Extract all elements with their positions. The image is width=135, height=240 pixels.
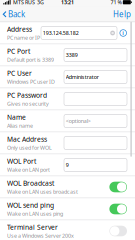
- staticText: i: [122, 29, 124, 37]
- button[interactable]: 3389: [64, 48, 127, 61]
- button[interactable]: WOL send ping: [0, 198, 135, 220]
- staticText: Only used for WOL: [7, 144, 52, 151]
- button[interactable]: Info: [119, 29, 127, 37]
- button[interactable]: WOL Broadcast: [0, 176, 135, 198]
- staticText: Back: [8, 9, 25, 19]
- staticText: MTS RUS 3G: [11, 0, 44, 6]
- staticText: WOL Broadcast: [7, 179, 54, 188]
- staticText: <optional>: [66, 117, 91, 125]
- button[interactable]: Terminal Server: [0, 220, 135, 240]
- staticText: WOL send ping: [7, 201, 54, 210]
- button[interactable]: Help: [109, 7, 135, 21]
- staticText: Wake on LAN uses ping: [7, 210, 63, 217]
- button[interactable]: 9: [64, 158, 127, 171]
- staticText: Alias name: [7, 122, 33, 129]
- staticText: Default port is 3389: [7, 56, 54, 63]
- staticText: Mac Address: [7, 135, 47, 144]
- staticText: Terminal Server: [7, 223, 58, 232]
- button[interactable]: Administrator: [64, 70, 127, 83]
- staticText: Address: [7, 25, 32, 34]
- staticText: Windows PC user ID: [7, 78, 55, 85]
- staticText: Help: [113, 9, 131, 19]
- staticText: Wake on LAN uses broadcast: [7, 188, 78, 195]
- button[interactable]: 193.124.58.182: [41, 26, 117, 39]
- button[interactable]: Back: [0, 7, 28, 21]
- staticText: PC User: [7, 69, 32, 78]
- button[interactable]: <optional>: [64, 114, 127, 127]
- staticText: PC name or IP: [7, 34, 40, 41]
- staticText: 193.124.58.182: [43, 29, 79, 37]
- staticText: Wake on LAN port: [7, 166, 50, 173]
- staticText: PC Password: [7, 91, 47, 100]
- staticText: Administrator: [66, 73, 99, 81]
- staticText: Name: [7, 113, 26, 122]
- staticText: 71 %: [111, 0, 122, 6]
- staticText: WOL Port: [7, 157, 36, 166]
- staticText: Use a Windows Server 200x: [7, 232, 74, 239]
- staticText: 9: [66, 161, 69, 169]
- button[interactable]: [64, 136, 127, 149]
- staticText: Gives no security: [7, 100, 49, 107]
- staticText: 13:21: [61, 0, 74, 6]
- button[interactable]: Clear text: [110, 30, 115, 36]
- button[interactable]: [64, 92, 127, 105]
- staticText: 3389: [66, 51, 78, 59]
- staticText: PC Port: [7, 47, 30, 56]
